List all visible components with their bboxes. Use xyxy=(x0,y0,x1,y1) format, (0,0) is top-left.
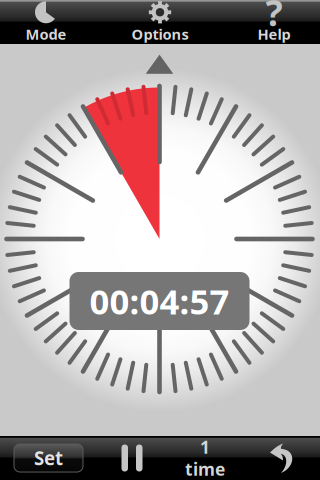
button[interactable]: 1 xyxy=(167,436,243,480)
button[interactable]: Set xyxy=(0,436,97,480)
staticText: ? xyxy=(265,0,282,36)
button[interactable]: Reset xyxy=(243,436,320,480)
button[interactable]: Options xyxy=(114,0,206,44)
staticText: 00:04:57 xyxy=(89,278,229,324)
button[interactable]: Pause xyxy=(97,436,167,480)
staticText: Help xyxy=(257,24,290,44)
button[interactable]: ? xyxy=(228,0,320,44)
staticText: Set xyxy=(34,446,63,470)
staticText: 1 xyxy=(200,435,210,458)
staticText: Mode xyxy=(25,24,66,44)
staticText: time xyxy=(185,457,225,480)
button[interactable]: Mode xyxy=(0,0,92,44)
staticText: Options xyxy=(131,24,188,44)
